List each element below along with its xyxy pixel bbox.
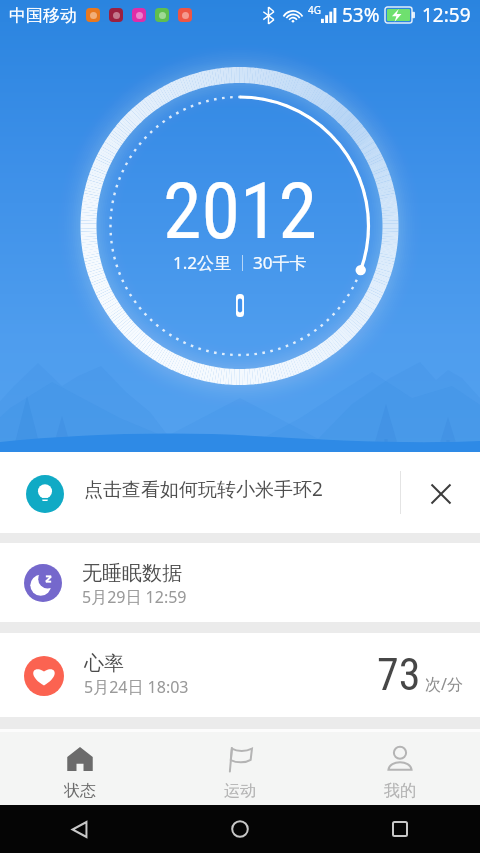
staticText: 73	[377, 649, 421, 701]
button[interactable]: 无睡眠数据	[0, 543, 480, 622]
button[interactable]: 我的	[320, 732, 480, 805]
staticText: 心率	[84, 651, 124, 676]
staticText: 中国移动	[9, 5, 77, 26]
button[interactable]: 运动	[160, 732, 320, 805]
staticText: 运动	[224, 781, 256, 801]
button[interactable]: 状态	[0, 732, 160, 805]
staticText: 30千卡	[253, 251, 307, 274]
staticText: 12:59	[422, 2, 471, 28]
button[interactable]: Recents	[320, 805, 480, 853]
button[interactable]: 关闭	[410, 452, 480, 533]
staticText: 无睡眠数据	[82, 561, 182, 586]
staticText: 点击查看如何玩转小米手环2	[84, 476, 323, 502]
button[interactable]: 心率	[0, 633, 480, 717]
staticText: 次/分	[425, 673, 463, 695]
staticText: 2012	[163, 166, 318, 257]
button[interactable]: Back	[0, 805, 160, 853]
staticText: 5月24日 18:03	[84, 676, 189, 698]
button[interactable]: Home	[160, 805, 320, 853]
button[interactable]: 点击查看如何玩转小米手环2	[0, 452, 480, 533]
staticText: 5月29日 12:59	[82, 586, 187, 608]
staticText: 我的	[384, 781, 416, 801]
staticText: 4G	[308, 3, 321, 17]
staticText: 53%	[342, 2, 380, 28]
staticText: 状态	[64, 781, 96, 801]
staticText: 1.2公里	[173, 251, 232, 274]
